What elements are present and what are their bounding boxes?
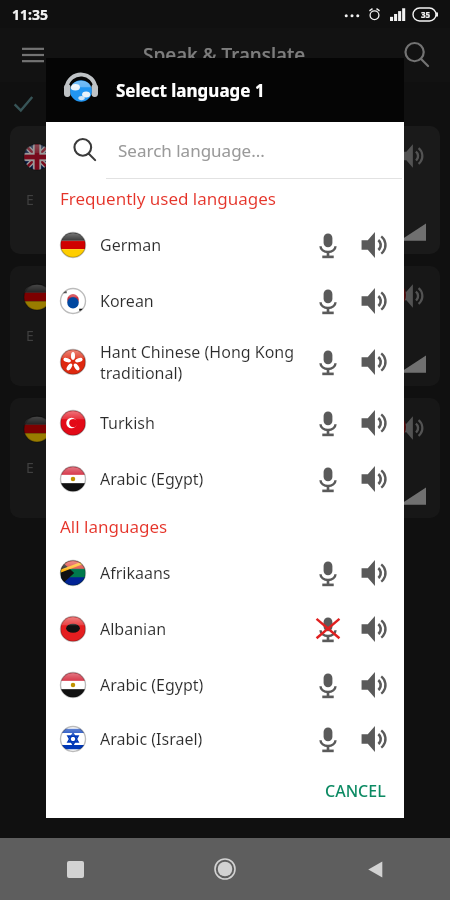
button[interactable]: Afrikaans [46,545,404,601]
button[interactable]: Speech input [308,719,348,759]
button[interactable]: Back [300,838,450,900]
staticText: Frequently used languages [60,187,276,210]
button[interactable]: Speech input [308,403,348,443]
button[interactable]: Speech input [308,281,348,321]
button[interactable]: Arabic (Israel) [46,713,404,764]
button[interactable]: Text to speech [354,665,394,705]
button[interactable]: Text to speech [354,342,394,382]
button[interactable]: Speech input [308,225,348,265]
button[interactable]: Speech input unavailable [308,609,348,649]
button[interactable]: Speech input [308,665,348,705]
button[interactable]: Arabic (Egypt) [46,657,404,713]
staticText: E [26,326,34,345]
button[interactable]: Menu [16,38,50,72]
staticText: Albanian [100,618,300,640]
staticText: 11:35 [12,5,48,24]
button[interactable]: E [10,126,440,254]
button[interactable]: Speech input [308,553,348,593]
staticText: All languages [60,515,168,538]
button[interactable]: Search [400,38,434,72]
staticText: Turkish [100,412,300,434]
button[interactable]: Recent apps [0,838,150,900]
staticText: Korean [100,290,300,312]
staticText: German [100,234,300,256]
button[interactable]: Text to speech [354,281,394,321]
button[interactable]: Speech input [308,459,348,499]
button[interactable]: Text to speech [354,553,394,593]
button[interactable]: E [10,266,440,386]
button[interactable]: Hant Chinese (Hong Kong traditional) [46,329,404,395]
staticText: Arabic (Egypt) [100,468,300,490]
button[interactable]: Home [150,838,300,900]
staticText: Select language 1 [116,79,265,102]
button[interactable]: Text to speech [354,403,394,443]
staticText: Search language... [118,139,265,162]
staticText: Afrikaans [100,562,300,584]
button[interactable]: E [10,398,440,518]
button[interactable]: German [46,217,404,273]
button[interactable]: Albanian [46,601,404,657]
button[interactable]: Text to speech [354,719,394,759]
button[interactable]: Turkish [46,395,404,451]
button[interactable]: CANCEL [307,770,404,812]
staticText: CANCEL [325,780,386,802]
staticText: Speak & Translate [143,42,306,68]
button[interactable]: Text to speech [354,609,394,649]
button[interactable]: Korean [46,273,404,329]
button[interactable]: Text to speech [354,225,394,265]
button[interactable]: Speech input [308,342,348,382]
staticText: E [26,190,34,209]
staticText: E [26,458,34,477]
staticText: Arabic (Israel) [100,728,300,750]
button[interactable]: Search language... [46,122,404,178]
button[interactable]: Text to speech [354,459,394,499]
staticText: Hant Chinese (Hong Kong traditional) [100,341,300,384]
staticText: Arabic (Egypt) [100,674,300,696]
button[interactable]: Arabic (Egypt) [46,451,404,507]
staticText: 35 [421,9,431,20]
